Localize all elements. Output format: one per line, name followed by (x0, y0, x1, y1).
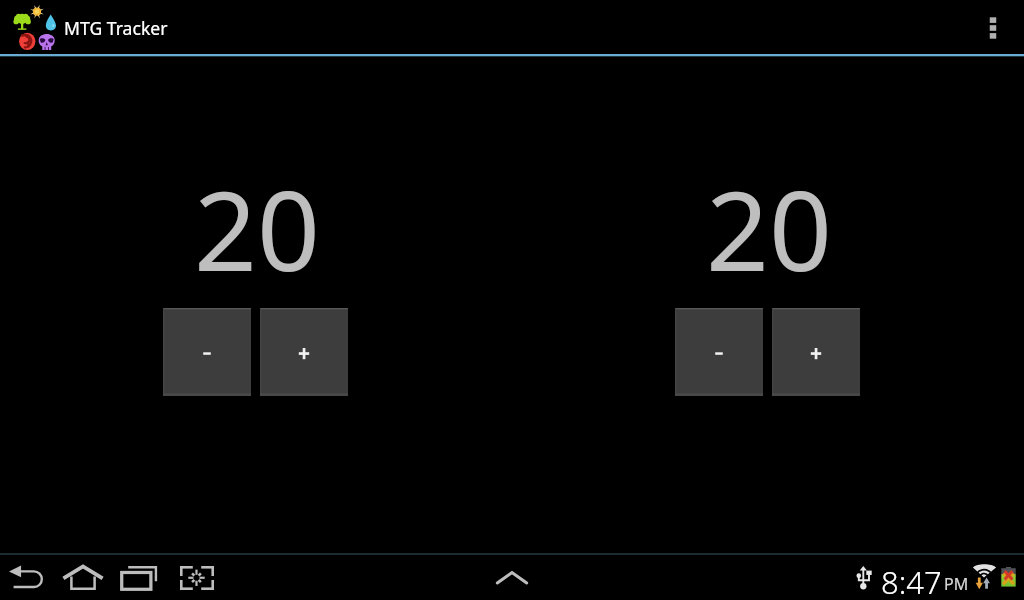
button[interactable]: Back (2, 553, 50, 600)
button[interactable]: Notifications (488, 553, 536, 600)
staticText: MTG Tracker (64, 16, 168, 40)
staticText: PM (944, 573, 969, 595)
button[interactable]: Decrease life (163, 308, 251, 396)
staticText: 20 (194, 153, 320, 303)
staticText: 8:47 (881, 561, 942, 600)
button[interactable]: Increase life (260, 308, 348, 396)
button[interactable]: Screenshot (173, 553, 221, 600)
button[interactable]: Recent apps (115, 553, 163, 600)
button[interactable]: Increase life (772, 308, 860, 396)
button[interactable]: Home (59, 553, 107, 600)
button[interactable]: More options (961, 0, 1024, 54)
staticText: 20 (706, 153, 832, 303)
button[interactable]: Decrease life (675, 308, 763, 396)
